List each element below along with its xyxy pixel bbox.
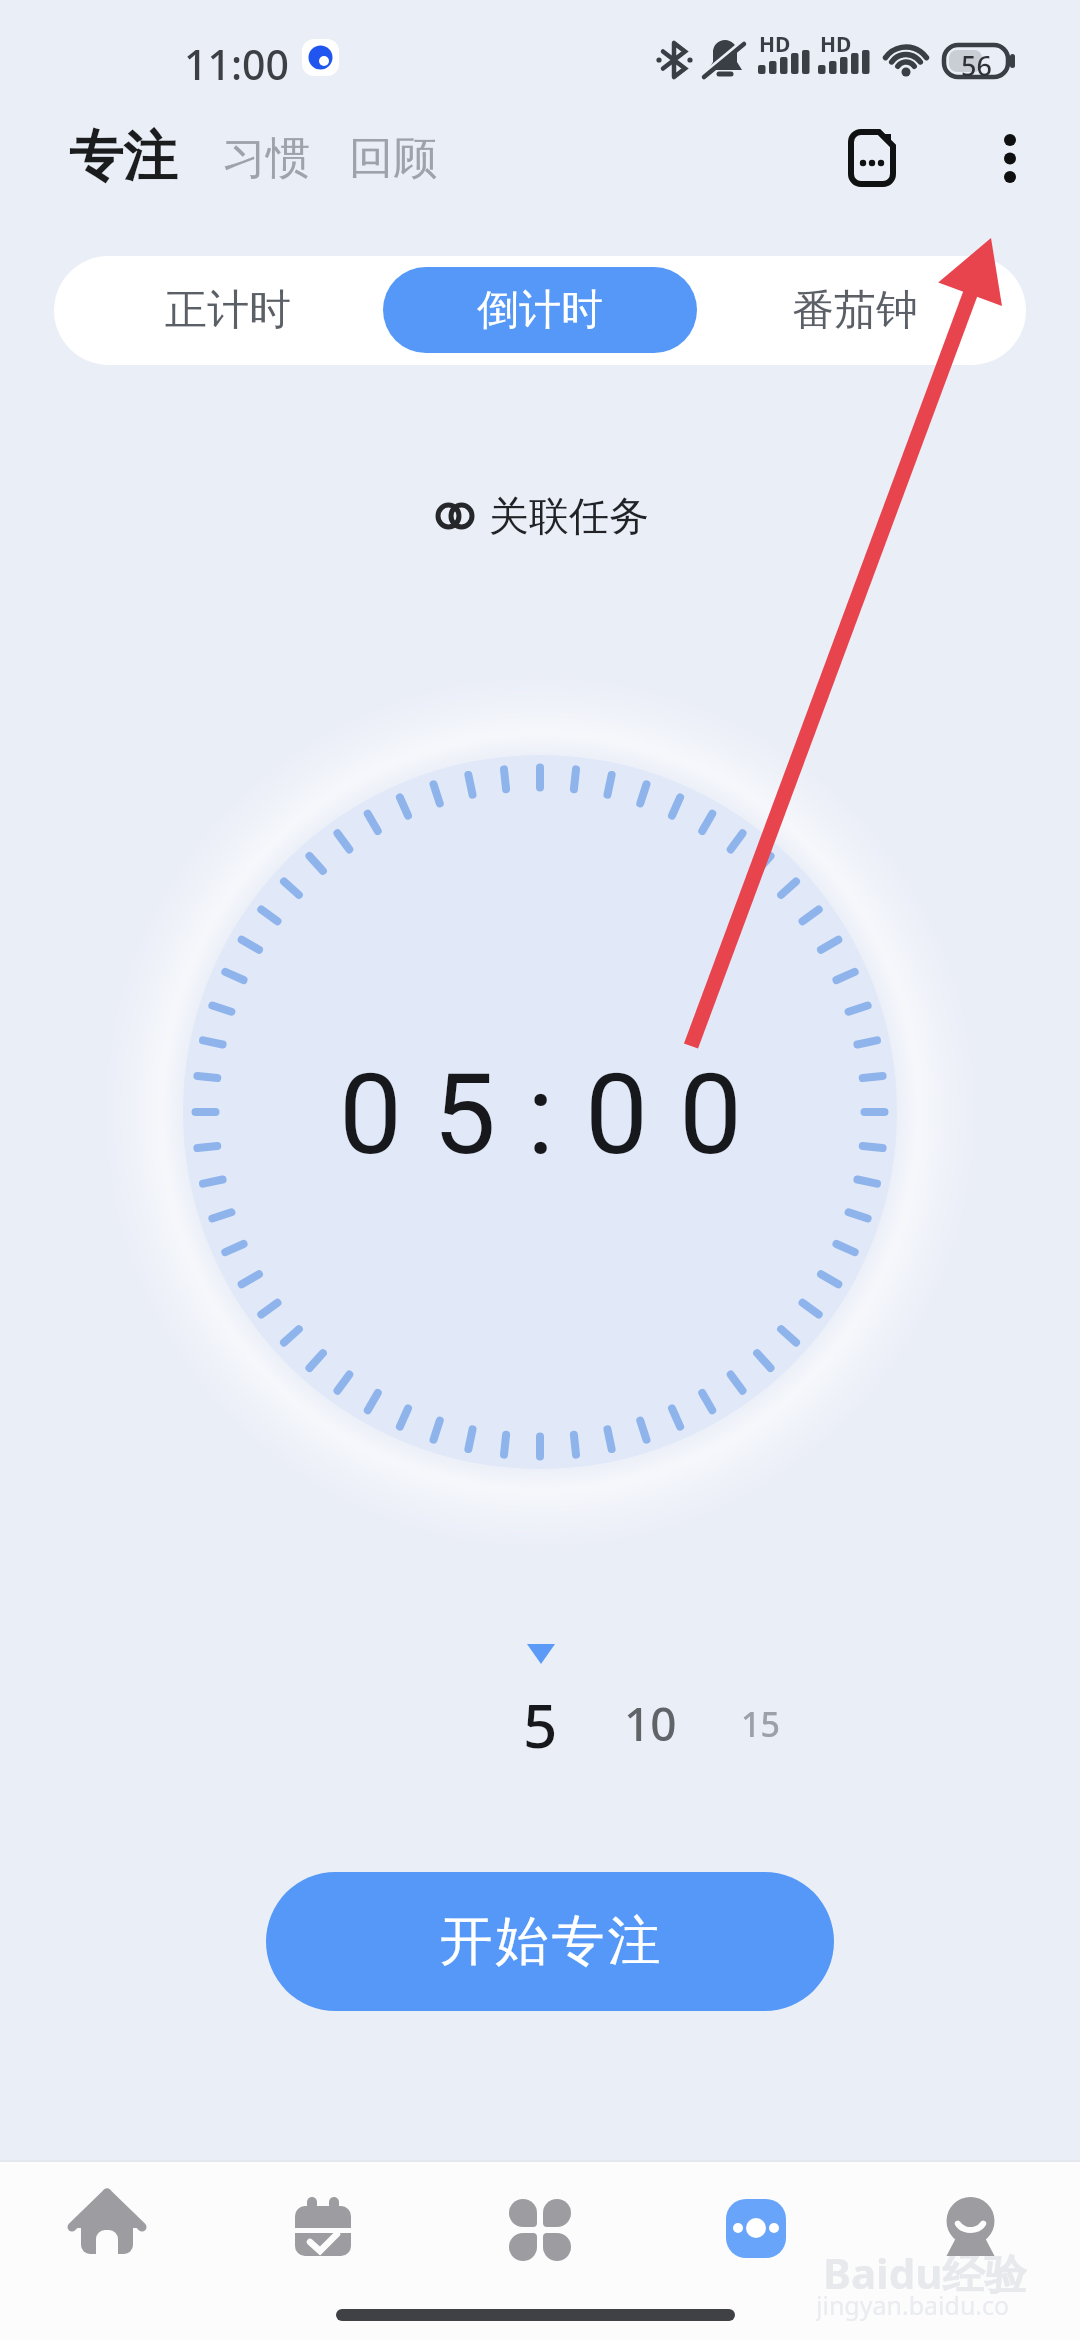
button[interactable]: 正计时: [71, 256, 385, 365]
button[interactable]: 倒计时: [383, 267, 697, 353]
button[interactable]: [844, 126, 900, 190]
staticText: 开始专注: [438, 1908, 662, 1975]
staticText: HD: [759, 30, 791, 54]
staticText: 习惯: [222, 131, 310, 186]
staticText: 15: [741, 1701, 780, 1747]
button[interactable]: 10: [610, 1692, 690, 1752]
button[interactable]: [465, 2170, 615, 2290]
staticText: 5: [523, 1684, 558, 1756]
button[interactable]: 回顾: [340, 128, 445, 188]
staticText: 正计时: [165, 284, 291, 337]
button[interactable]: 专注: [60, 122, 185, 192]
button[interactable]: [248, 2170, 398, 2290]
staticText: 回顾: [349, 131, 437, 186]
staticText: 05:00: [339, 1049, 773, 1180]
staticText: Baidu经验: [823, 2244, 1027, 2296]
staticText: 10: [624, 1692, 677, 1752]
button[interactable]: 开始专注: [266, 1872, 834, 2011]
staticText: 56: [961, 47, 992, 77]
staticText: 关联任务: [489, 491, 649, 541]
button[interactable]: [984, 126, 1036, 190]
staticText: 番茄钟: [792, 284, 918, 337]
button[interactable]: [896, 2170, 1046, 2290]
staticText: HD: [820, 30, 852, 54]
staticText: 11:00: [184, 36, 289, 84]
staticText: 专注: [69, 123, 177, 191]
button[interactable]: 习惯: [213, 128, 318, 188]
button[interactable]: 关联任务: [436, 488, 652, 544]
button[interactable]: [681, 2170, 831, 2290]
button[interactable]: 15: [722, 1700, 798, 1748]
button[interactable]: 5: [500, 1684, 580, 1756]
button[interactable]: 番茄钟: [698, 256, 1012, 365]
button[interactable]: [32, 2170, 182, 2290]
staticText: 倒计时: [477, 284, 603, 337]
staticText: jingyan.baidu.com: [816, 2288, 1026, 2322]
